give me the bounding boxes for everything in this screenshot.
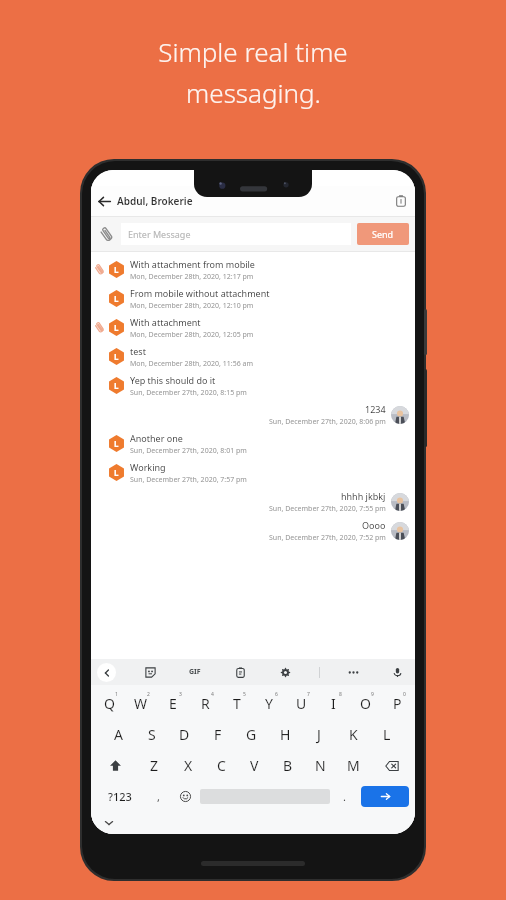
staticText: V — [250, 756, 259, 775]
button[interactable]: Back — [91, 188, 117, 214]
button[interactable]: C — [205, 750, 238, 781]
staticText: B — [283, 756, 293, 775]
button[interactable]: Oooo — [91, 516, 415, 545]
button[interactable]: V — [238, 750, 271, 781]
staticText: E — [169, 694, 177, 713]
button[interactable]: Delete conversation — [387, 187, 415, 215]
button[interactable]: D — [168, 719, 201, 750]
button[interactable]: Q — [93, 688, 125, 719]
button[interactable]: U — [285, 688, 317, 719]
button[interactable]: L — [91, 429, 415, 458]
button[interactable]: E — [157, 688, 189, 719]
staticText: Oooo — [362, 519, 386, 531]
staticText: With attachment — [130, 316, 201, 328]
button[interactable]: Settings — [274, 661, 296, 683]
button[interactable]: B — [271, 750, 304, 781]
staticText: test — [130, 345, 146, 357]
staticText: , — [157, 789, 160, 804]
staticText: L — [114, 264, 119, 275]
button[interactable]: L — [91, 458, 415, 487]
staticText: 7 — [307, 691, 310, 698]
staticText: H — [280, 725, 291, 744]
button[interactable]: J — [302, 719, 336, 750]
button[interactable]: K — [336, 719, 370, 750]
button[interactable]: Enter — [361, 786, 409, 807]
staticText: Enter Message — [128, 228, 191, 240]
button[interactable]: L — [91, 255, 415, 284]
button[interactable]: L — [370, 719, 404, 750]
button[interactable]: Voice input — [386, 661, 408, 683]
button[interactable]: S — [135, 719, 168, 750]
staticText: 1 — [115, 691, 118, 698]
button[interactable]: F — [201, 719, 234, 750]
button[interactable]: O — [349, 688, 381, 719]
staticText: Mon, December 28th, 2020, 11:56 am — [130, 359, 253, 369]
button[interactable]: More options — [343, 662, 363, 682]
staticText: O — [360, 694, 371, 713]
staticText: Sun, December 27th, 2020, 8:15 pm — [130, 388, 247, 398]
staticText: S — [148, 725, 156, 744]
button[interactable]: X — [171, 750, 205, 781]
staticText: F — [214, 725, 222, 744]
staticText: Mon, December 28th, 2020, 12:17 pm — [130, 272, 254, 282]
button[interactable]: L — [91, 342, 415, 371]
button[interactable]: 1234 — [91, 400, 415, 429]
button[interactable]: . — [330, 781, 359, 812]
staticText: L — [114, 438, 119, 449]
staticText: D — [179, 725, 190, 744]
button[interactable]: Backspace — [370, 750, 413, 781]
button[interactable]: Emoji — [171, 781, 200, 812]
button[interactable]: Clipboard — [229, 661, 251, 683]
button[interactable]: Stickers — [139, 661, 161, 683]
button[interactable]: Back — [97, 663, 116, 682]
button[interactable]: , — [145, 781, 171, 812]
staticText: Sun, December 27th, 2020, 7:55 pm — [269, 504, 386, 514]
staticText: W — [134, 694, 148, 713]
staticText: A — [114, 725, 123, 744]
button[interactable]: GIF — [184, 661, 206, 683]
button[interactable]: Hide keyboard — [91, 812, 415, 834]
button[interactable]: Y — [253, 688, 285, 719]
staticText: L — [114, 351, 119, 362]
staticText: With attachment from mobile — [130, 258, 255, 270]
button[interactable]: Send — [357, 223, 409, 245]
button[interactable]: ?123 — [95, 781, 145, 812]
button[interactable]: A — [102, 719, 135, 750]
button[interactable]: L — [91, 284, 415, 313]
button[interactable]: T — [221, 688, 253, 719]
button[interactable]: hhhh jkbkj — [91, 487, 415, 516]
staticText: 9 — [371, 691, 374, 698]
button[interactable]: W — [125, 688, 157, 719]
button[interactable]: H — [268, 719, 302, 750]
button[interactable]: I — [317, 688, 349, 719]
staticText: 8 — [339, 691, 342, 698]
staticText: hhhh jkbkj — [341, 490, 386, 502]
staticText: 1234 — [365, 403, 386, 415]
button[interactable]: N — [304, 750, 337, 781]
staticText: Yep this should do it — [130, 374, 216, 386]
button[interactable]: G — [234, 719, 268, 750]
staticText: N — [315, 756, 326, 775]
button[interactable]: Z — [137, 750, 171, 781]
staticText: L — [383, 725, 391, 744]
button[interactable]: P — [381, 688, 413, 719]
button[interactable]: L — [91, 313, 415, 342]
staticText: L — [114, 322, 119, 333]
staticText: G — [246, 725, 257, 744]
staticText: Y — [265, 694, 273, 713]
staticText: Abdul, Brokerie — [117, 194, 387, 208]
staticText: Sun, December 27th, 2020, 7:52 pm — [269, 533, 386, 543]
staticText: C — [217, 756, 226, 775]
button[interactable]: R — [189, 688, 221, 719]
staticText: 3 — [179, 691, 182, 698]
button[interactable]: L — [91, 371, 415, 400]
button[interactable]: Attach file — [91, 219, 121, 249]
staticText: Q — [104, 694, 115, 713]
button[interactable]: Shift — [93, 750, 137, 781]
staticText: J — [317, 725, 321, 744]
button[interactable]: M — [337, 750, 370, 781]
staticText: K — [349, 725, 358, 744]
staticText: 2 — [147, 691, 150, 698]
staticText: L — [114, 467, 119, 478]
